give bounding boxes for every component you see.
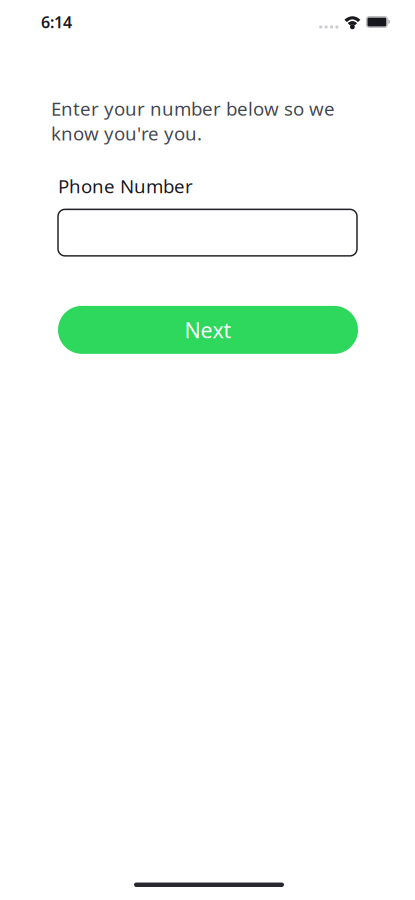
staticText: Enter your number below so we know you'r… (51, 96, 335, 146)
staticText: Phone Number (58, 174, 193, 198)
staticText: Next (184, 316, 231, 344)
staticText: 6:14 (41, 11, 72, 33)
button[interactable]: Phone Number text field (58, 209, 357, 256)
button[interactable]: Next (58, 306, 358, 354)
